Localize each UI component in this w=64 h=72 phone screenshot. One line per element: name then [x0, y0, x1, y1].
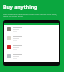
button[interactable]	[7, 27, 59, 35]
other: App preview	[3, 20, 60, 66]
button[interactable]	[7, 54, 59, 62]
button[interactable]	[7, 36, 59, 44]
staticText: Get anything delivered from the stores y…	[3, 12, 60, 18]
button[interactable]	[7, 45, 59, 53]
staticText: Buy anything	[3, 3, 38, 10]
